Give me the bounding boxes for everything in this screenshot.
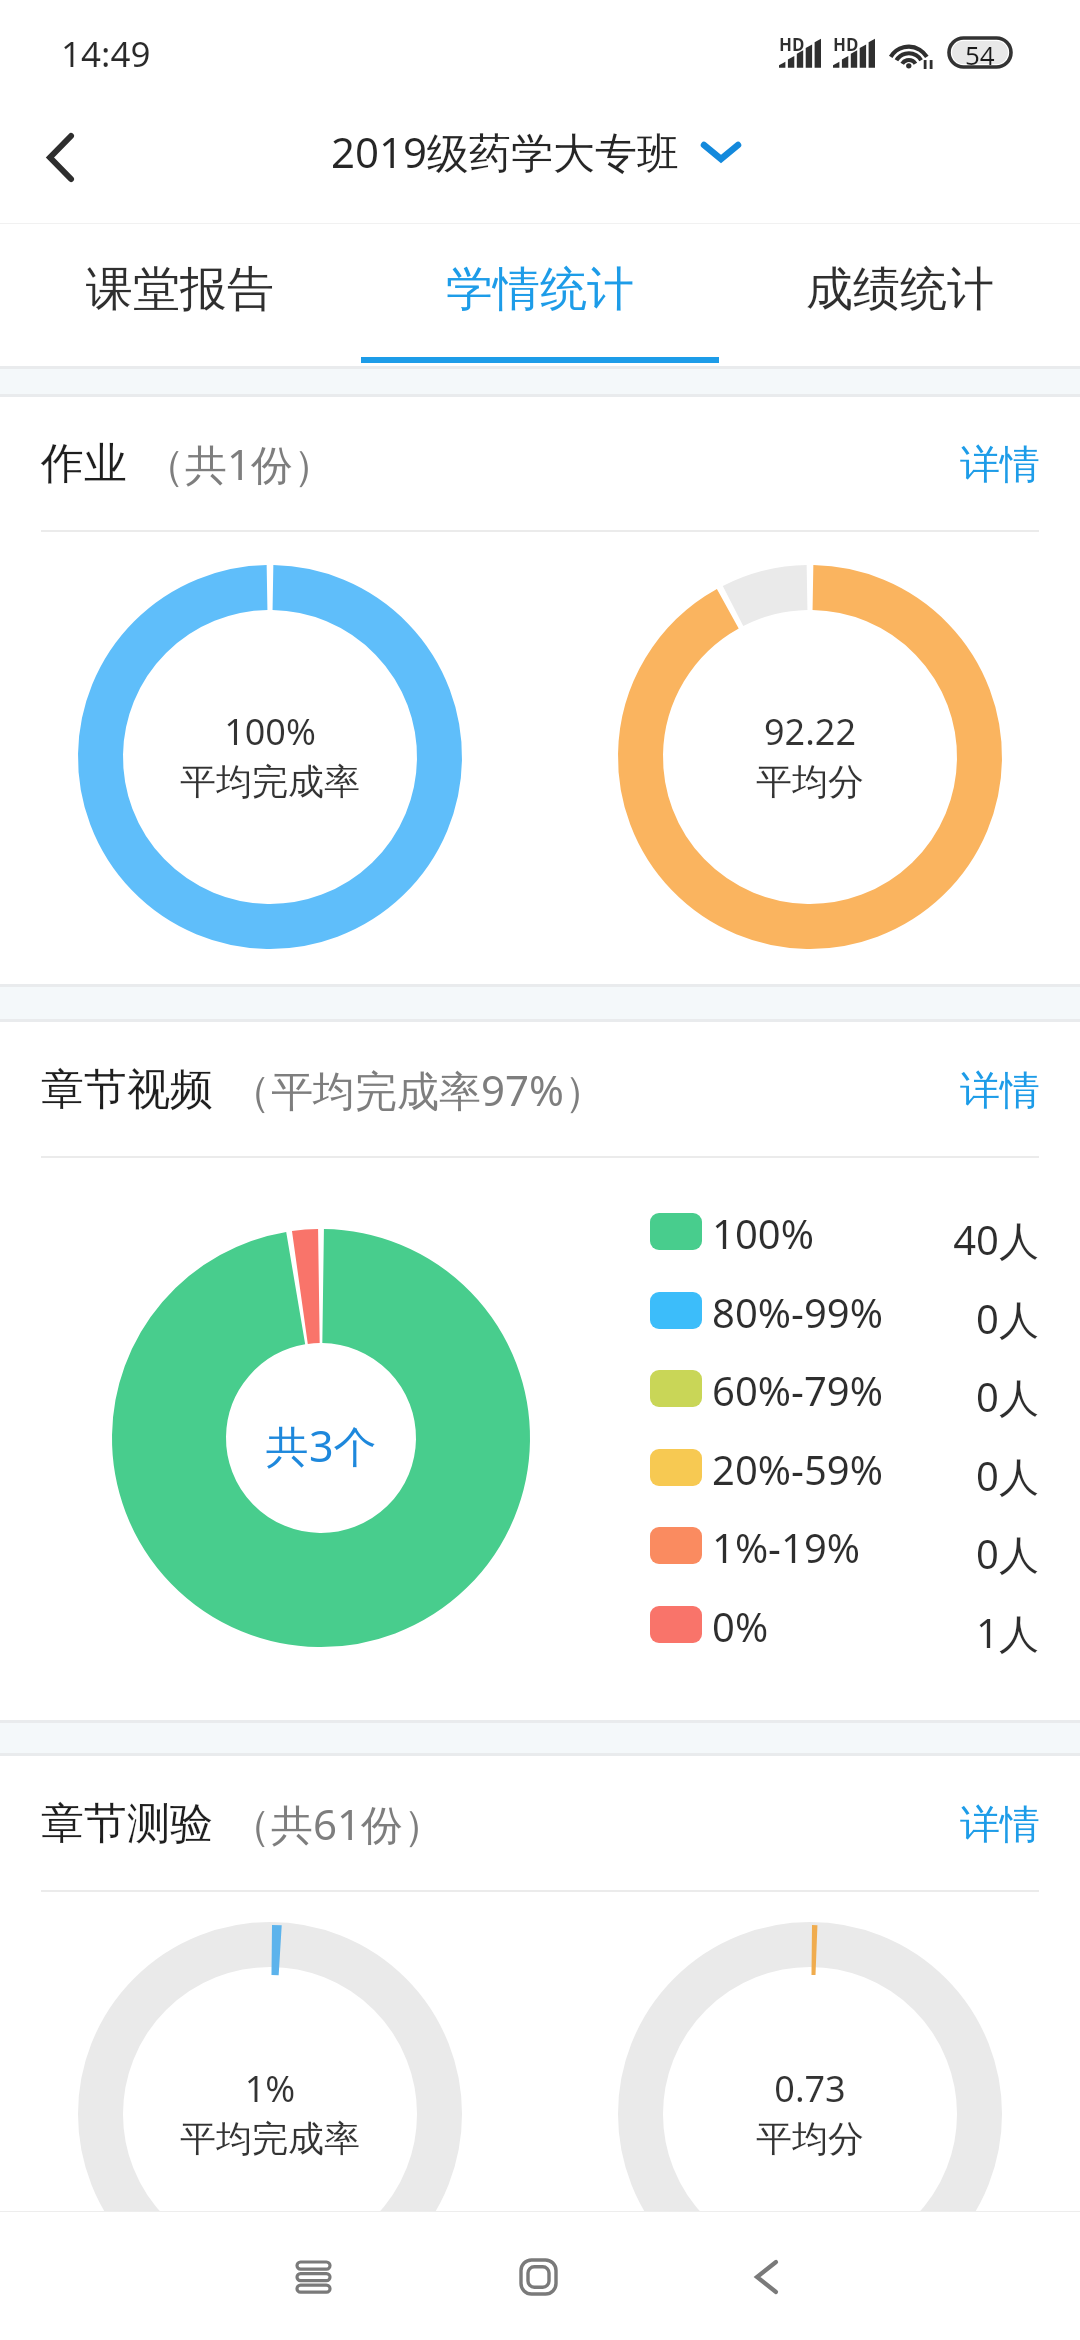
button[interactable]: 详情 <box>942 1049 1058 1131</box>
staticText: 平均分 <box>610 2116 1010 2161</box>
staticText: 2019级药学大专班 <box>331 123 680 180</box>
button[interactable]: 成绩统计 <box>720 224 1080 366</box>
staticText: HD <box>779 33 805 56</box>
staticText: 章节测验 <box>41 1797 213 1851</box>
button[interactable]: Recent apps <box>258 2222 368 2332</box>
staticText: 平均分 <box>610 759 1010 804</box>
staticText: 学情统计 <box>446 260 634 319</box>
staticText: 60%-79% <box>712 1363 883 1417</box>
staticText: 详情 <box>960 439 1040 489</box>
button[interactable]: 课堂报告 <box>0 224 360 366</box>
staticText: 100% <box>712 1206 814 1260</box>
staticText: 0人 <box>976 1291 1039 1346</box>
button[interactable]: 2019级药学大专班 <box>331 123 738 180</box>
button[interactable]: 学情统计 <box>360 224 720 366</box>
staticText: 0人 <box>976 1448 1039 1503</box>
staticText: 0人 <box>976 1526 1039 1581</box>
staticText: 作业 <box>41 437 127 491</box>
staticText: （共1份） <box>143 435 336 492</box>
staticText: （共61份） <box>229 1795 446 1852</box>
button[interactable]: 详情 <box>942 1783 1058 1865</box>
staticText: 0.73 <box>610 2064 1010 2113</box>
staticText: 40人 <box>953 1212 1039 1267</box>
staticText: （平均完成率97%） <box>229 1061 606 1118</box>
staticText: 0人 <box>976 1369 1039 1424</box>
staticText: 共3个 <box>266 1416 377 1475</box>
staticText: 1人 <box>976 1605 1039 1660</box>
staticText: 100% <box>70 707 470 756</box>
button[interactable]: 详情 <box>942 423 1058 505</box>
staticText: 课堂报告 <box>86 260 274 319</box>
staticText: 平均完成率 <box>70 759 470 804</box>
staticText: 详情 <box>960 1065 1040 1115</box>
staticText: 平均完成率 <box>70 2116 470 2161</box>
staticText: 80%-99% <box>712 1285 883 1339</box>
button[interactable]: Home <box>483 2222 593 2332</box>
staticText: 1%-19% <box>712 1520 860 1574</box>
staticText: 14:49 <box>61 30 151 78</box>
staticText: 1% <box>70 2064 470 2113</box>
staticText: 成绩统计 <box>806 260 994 319</box>
staticText: 详情 <box>960 1799 1040 1849</box>
staticText: 20%-59% <box>712 1442 883 1496</box>
staticText: 章节视频 <box>41 1063 213 1117</box>
staticText: 0% <box>712 1599 769 1653</box>
button[interactable]: Back <box>710 2222 820 2332</box>
staticText: 92.22 <box>610 707 1010 756</box>
button[interactable]: Back <box>6 103 114 211</box>
staticText: 54 <box>965 37 995 66</box>
staticText: HD <box>833 33 859 56</box>
